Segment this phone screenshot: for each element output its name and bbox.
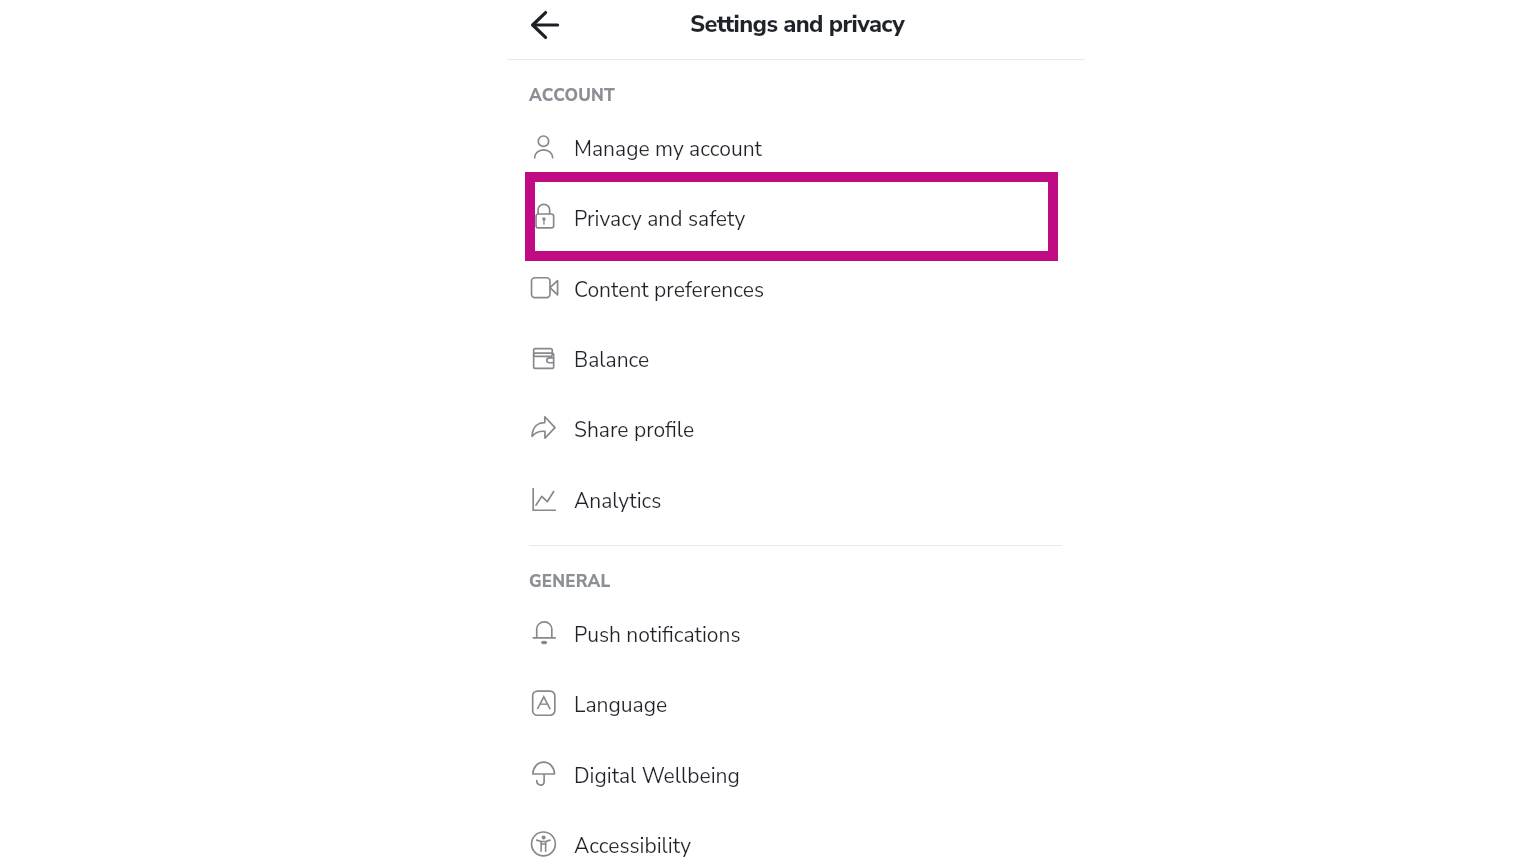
button[interactable]: Language (525, 668, 1058, 738)
button[interactable]: Digital Wellbeing (525, 739, 1058, 809)
button[interactable]: Balance (525, 323, 1058, 393)
staticText: Push notifications (574, 621, 741, 650)
staticText: GENERAL (529, 570, 611, 593)
button[interactable]: Accessibility (525, 809, 1058, 864)
staticText: ACCOUNT (529, 84, 616, 107)
staticText: Language (574, 691, 668, 720)
staticText: Digital Wellbeing (574, 762, 740, 791)
staticText: Manage my account (574, 135, 762, 164)
staticText: Privacy and safety (574, 205, 746, 234)
staticText: Analytics (574, 487, 662, 516)
staticText: Accessibility (574, 832, 691, 861)
staticText: Content preferences (574, 276, 765, 305)
button[interactable]: Analytics (525, 464, 1058, 534)
button[interactable]: Privacy and safety (525, 182, 1058, 252)
button[interactable]: Back (521, 1, 568, 48)
button[interactable]: Manage my account (525, 112, 1058, 182)
staticText: Settings and privacy (690, 8, 905, 40)
button[interactable]: Content preferences (525, 253, 1058, 323)
button[interactable]: Share profile (525, 393, 1058, 463)
staticText: Share profile (574, 416, 695, 445)
staticText: Balance (574, 346, 650, 375)
button[interactable]: Push notifications (525, 598, 1058, 668)
